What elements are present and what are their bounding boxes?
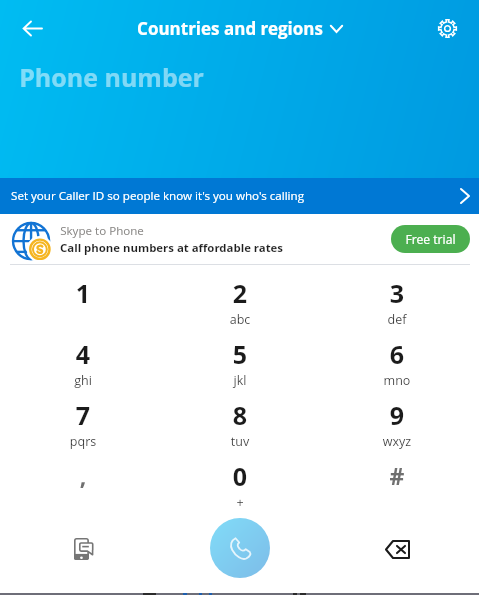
button[interactable]: #	[359, 440, 435, 498]
staticText: abc	[202, 311, 278, 328]
button[interactable]: Settings	[425, 6, 469, 50]
staticText: 7	[45, 398, 121, 432]
staticText: ,	[45, 460, 121, 491]
button[interactable]: Call	[210, 518, 270, 578]
staticText: 1	[45, 276, 121, 310]
button[interactable]: ,	[45, 440, 121, 498]
button[interactable]: 9	[359, 379, 435, 437]
button[interactable]: 8	[202, 379, 278, 437]
staticText: jkl	[202, 372, 278, 389]
button[interactable]: Skype to Phone	[0, 214, 479, 264]
button[interactable]: 4	[45, 318, 121, 376]
staticText: ghi	[45, 372, 121, 389]
staticText: Free trial	[405, 231, 456, 248]
button[interactable]: Backspace	[371, 523, 423, 575]
staticText: Phone number	[19, 60, 204, 94]
button[interactable]: Free trial	[391, 225, 470, 253]
staticText: 8	[202, 398, 278, 432]
button[interactable]: 3	[359, 257, 435, 315]
staticText: tuv	[202, 433, 278, 450]
staticText: pqrs	[45, 433, 121, 450]
button[interactable]: 6	[359, 318, 435, 376]
staticText: Countries and regions	[137, 17, 323, 40]
button[interactable]: 7	[45, 379, 121, 437]
button[interactable]: 5	[202, 318, 278, 376]
staticText: 5	[202, 337, 278, 371]
button[interactable]: 1	[45, 257, 121, 315]
staticText: 4	[45, 337, 121, 371]
staticText: +	[202, 494, 278, 511]
button[interactable]: Back	[10, 6, 54, 50]
staticText: Call phone numbers at affordable rates	[60, 240, 283, 256]
staticText: #	[359, 460, 435, 491]
button[interactable]: Countries and regions	[133, 17, 347, 40]
button[interactable]: 2	[202, 257, 278, 315]
staticText: 3	[359, 276, 435, 310]
staticText: wxyz	[359, 433, 435, 450]
staticText: Skype to Phone	[60, 223, 144, 239]
staticText: 9	[359, 398, 435, 432]
staticText: 0	[202, 459, 278, 493]
button[interactable]: Set your Caller ID so people know it's y…	[0, 178, 479, 214]
staticText: 2	[202, 276, 278, 310]
staticText: mno	[359, 372, 435, 389]
button[interactable]: 0	[202, 440, 278, 498]
staticText: def	[359, 311, 435, 328]
staticText: Set your Caller ID so people know it's y…	[11, 188, 304, 204]
button[interactable]: Send SMS	[57, 523, 109, 575]
staticText: 6	[359, 337, 435, 371]
